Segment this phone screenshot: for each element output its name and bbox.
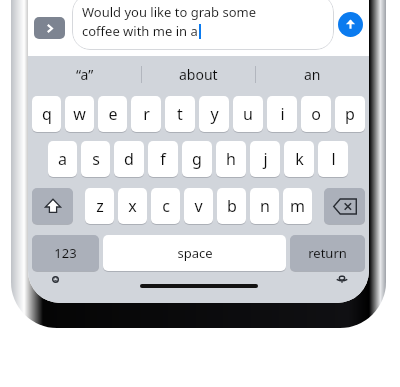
staticText: c — [162, 195, 170, 217]
staticText: u — [243, 103, 253, 125]
staticText: v — [194, 195, 203, 217]
button[interactable]: a — [48, 141, 77, 177]
button[interactable]: h — [216, 141, 246, 177]
other: Shift — [30, 188, 75, 224]
staticText: return — [308, 244, 347, 262]
staticText: d — [124, 148, 134, 170]
button[interactable]: q — [32, 96, 61, 132]
staticText: o — [311, 103, 321, 125]
staticText: “a” — [76, 65, 94, 84]
button[interactable]: m — [283, 188, 312, 224]
button[interactable]: i — [267, 96, 297, 132]
button[interactable]: 123 — [32, 235, 99, 271]
button[interactable]: space — [103, 235, 286, 271]
staticText: coffee with me in a — [82, 22, 198, 40]
button[interactable]: c — [151, 188, 180, 224]
button[interactable]: f — [148, 141, 178, 177]
button[interactable]: y — [199, 96, 229, 132]
staticText: t — [177, 103, 183, 125]
staticText: q — [42, 103, 52, 125]
staticText: y — [210, 103, 219, 125]
button[interactable]: Send — [338, 12, 363, 37]
button[interactable]: w — [65, 96, 94, 132]
staticText: i — [280, 103, 285, 125]
button[interactable]: z — [85, 188, 114, 224]
staticText: f — [160, 148, 166, 170]
button[interactable]: return — [290, 235, 365, 271]
staticText: l — [331, 148, 336, 170]
staticText: p — [345, 103, 355, 125]
button[interactable]: s — [81, 141, 110, 177]
button[interactable]: l — [318, 141, 348, 177]
staticText: k — [295, 148, 304, 170]
button[interactable]: x — [118, 188, 147, 224]
button[interactable] — [32, 188, 73, 224]
button[interactable]: v — [184, 188, 213, 224]
button[interactable]: Emoji — [42, 276, 68, 283]
staticText: a — [58, 148, 67, 170]
staticText: s — [92, 148, 100, 170]
button[interactable]: Expand apps — [34, 17, 65, 39]
button[interactable]: o — [301, 96, 331, 132]
button[interactable]: r — [131, 96, 161, 132]
staticText: e — [108, 103, 118, 125]
staticText: space — [177, 244, 213, 262]
button[interactable]: g — [182, 141, 212, 177]
button[interactable] — [324, 188, 365, 224]
button[interactable]: j — [250, 141, 280, 177]
button[interactable]: d — [114, 141, 144, 177]
button[interactable]: n — [250, 188, 279, 224]
staticText: w — [73, 103, 86, 125]
staticText: g — [192, 148, 202, 170]
staticText: m — [290, 195, 305, 217]
staticText: z — [96, 195, 104, 217]
button[interactable]: Dictation — [329, 276, 355, 283]
button[interactable]: u — [233, 96, 263, 132]
button[interactable]: k — [284, 141, 314, 177]
staticText: about — [179, 65, 218, 84]
staticText: x — [128, 195, 137, 217]
button[interactable]: e — [98, 96, 127, 132]
other: Backspace — [322, 188, 367, 224]
staticText: 123 — [54, 244, 77, 262]
staticText: an — [304, 65, 321, 84]
button[interactable]: b — [217, 188, 246, 224]
staticText: h — [226, 148, 236, 170]
staticText: j — [263, 148, 268, 170]
staticText: r — [143, 103, 150, 125]
staticText: n — [260, 195, 270, 217]
button[interactable]: about — [142, 56, 255, 92]
staticText: Would you like to grab some — [82, 3, 257, 21]
button[interactable]: an — [256, 56, 369, 92]
button[interactable]: Would you like to grab some — [72, 0, 334, 50]
staticText: b — [227, 195, 237, 217]
button[interactable]: t — [165, 96, 195, 132]
button[interactable]: p — [335, 96, 365, 132]
button[interactable]: “a” — [28, 56, 141, 92]
